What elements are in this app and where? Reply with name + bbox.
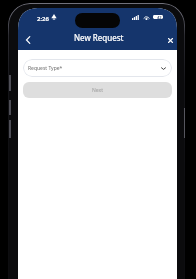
- staticText: 2:26: [37, 15, 49, 23]
- button[interactable]: Request Type*: [23, 59, 172, 77]
- staticText: New Request: [74, 32, 124, 43]
- button[interactable]: Back: [20, 32, 36, 48]
- staticText: 42: [157, 15, 162, 19]
- button[interactable]: Close: [162, 32, 177, 48]
- button[interactable]: Next: [23, 82, 172, 98]
- staticText: Next: [92, 87, 103, 94]
- staticText: Request Type*: [28, 65, 63, 72]
